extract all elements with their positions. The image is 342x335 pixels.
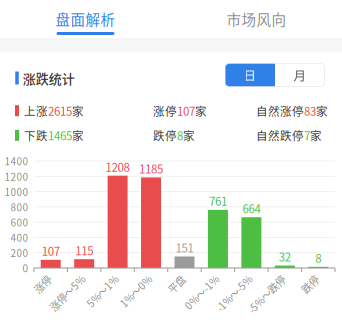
staticText: 跌停	[153, 127, 177, 144]
staticText: 5%～1%	[77, 270, 117, 284]
staticText: 83	[304, 102, 316, 119]
staticText: 1000	[4, 184, 28, 199]
staticText: 自然涨停	[256, 102, 304, 119]
staticText: 107	[42, 242, 60, 259]
button[interactable]: 日	[225, 63, 275, 86]
staticText: 0%～-1%	[174, 270, 217, 284]
staticText: 涨停	[30, 270, 50, 284]
staticText: 家	[316, 102, 328, 119]
staticText: 涨跌统计	[23, 69, 75, 87]
staticText: 平盘	[163, 270, 183, 284]
staticText: 1208	[106, 158, 130, 175]
staticText: 家	[183, 127, 195, 144]
staticText: 664	[242, 200, 260, 217]
staticText: 8	[177, 127, 183, 144]
staticText: 家	[310, 127, 322, 144]
staticText: 151	[175, 239, 193, 256]
staticText: 涨停	[153, 102, 177, 119]
staticText: 自然跌停	[256, 127, 304, 144]
staticText: 115	[75, 242, 93, 259]
staticText: 盘面解析	[55, 8, 115, 29]
staticText: 1%～0%	[110, 270, 150, 284]
button[interactable]: 月	[275, 63, 325, 86]
staticText: 200	[10, 245, 28, 260]
staticText: 7	[304, 127, 310, 144]
staticText: 8	[315, 249, 321, 266]
staticText: -5%～跌停	[236, 270, 284, 284]
staticText: 1200	[4, 169, 28, 183]
staticText: 400	[10, 230, 28, 245]
button[interactable]: 盘面解析	[0, 0, 171, 38]
staticText: -1%～-5%	[204, 270, 250, 284]
staticText: 600	[10, 215, 28, 229]
staticText: 家	[72, 102, 84, 119]
staticText: 800	[10, 200, 28, 214]
staticText: 下跌	[24, 127, 48, 144]
staticText: 2615	[48, 102, 72, 119]
staticText: 家	[195, 102, 207, 119]
staticText: 761	[209, 192, 227, 209]
staticText: 家	[72, 127, 84, 144]
staticText: 1185	[139, 160, 163, 177]
staticText: 1400	[4, 154, 28, 168]
staticText: 上涨	[24, 102, 48, 119]
staticText: 涨停～5%	[38, 270, 83, 284]
staticText: 107	[177, 102, 195, 119]
staticText: 跌停	[297, 270, 317, 284]
staticText: 1465	[48, 127, 72, 144]
staticText: 0	[22, 261, 28, 275]
staticText: 月	[293, 66, 306, 84]
staticText: 32	[279, 248, 291, 265]
staticText: 日	[243, 66, 256, 84]
staticText: 市场风向	[226, 8, 286, 29]
button[interactable]: 市场风向	[171, 0, 342, 38]
